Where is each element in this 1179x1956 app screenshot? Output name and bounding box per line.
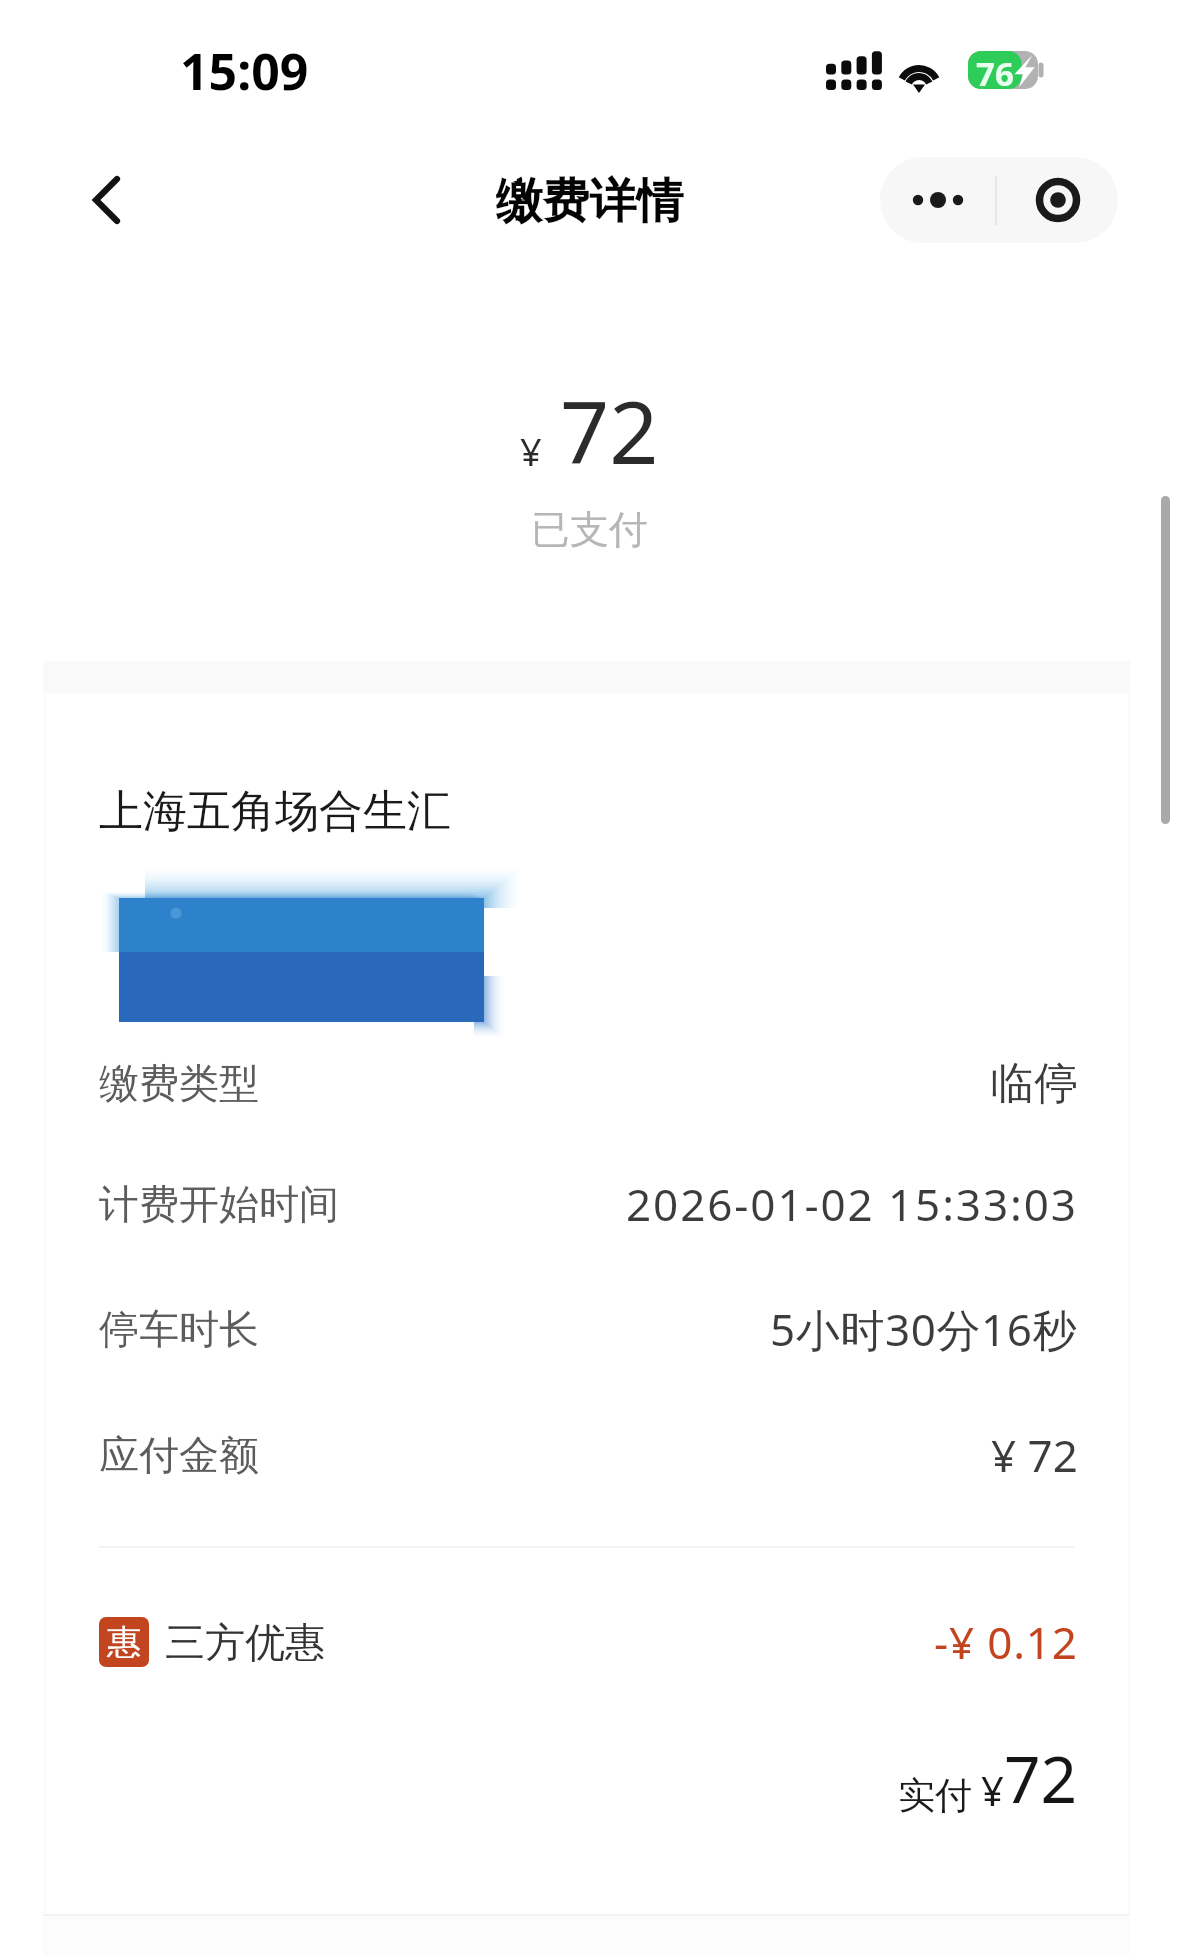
staticText: 2026-01-02 15:33:03 — [626, 1174, 1078, 1234]
staticText: 72 — [560, 372, 659, 489]
button[interactable]: Back — [57, 152, 153, 248]
staticText: ¥ — [981, 1763, 1004, 1817]
staticText: 计费开始时间 — [99, 1179, 339, 1229]
staticText: 临停 — [990, 1056, 1078, 1111]
staticText: 应付金额 — [99, 1430, 259, 1480]
staticText: 76 — [976, 51, 1014, 96]
staticText: 缴费详情 — [0, 172, 1179, 231]
staticText: ¥ — [520, 425, 542, 477]
button[interactable]: Close mini program — [997, 157, 1118, 243]
staticText: ¥ 72 — [991, 1425, 1078, 1485]
staticText: 停车时长 — [99, 1304, 259, 1354]
button[interactable]: 惠 — [43, 1604, 1130, 1680]
staticText: 三方优惠 — [165, 1617, 325, 1667]
staticText: 72 — [1004, 1735, 1078, 1822]
staticText: 实付 — [898, 1772, 972, 1819]
button[interactable]: More options — [880, 157, 995, 243]
staticText: -¥ 0.12 — [934, 1612, 1078, 1672]
staticText: 5小时30分16秒 — [770, 1299, 1078, 1359]
staticText: 上海五角场合生汇 — [99, 784, 451, 839]
staticText: 15:09 — [180, 37, 309, 105]
staticText: 缴费类型 — [99, 1058, 259, 1108]
staticText: 已支付 — [0, 505, 1179, 554]
staticText: 惠 — [107, 1621, 141, 1664]
